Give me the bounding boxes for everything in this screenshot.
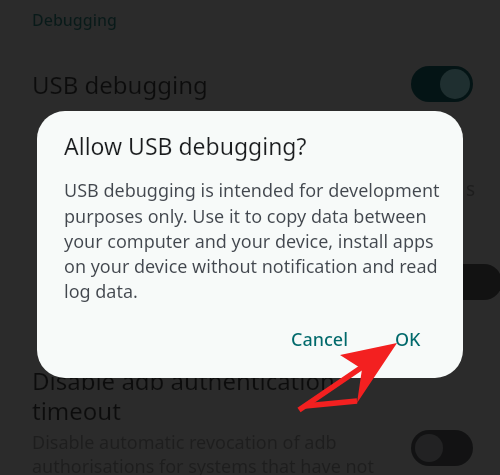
button[interactable]: OK xyxy=(381,319,435,360)
staticText: s xyxy=(466,176,476,202)
staticText: Allow USB debugging? xyxy=(64,130,307,161)
staticText: USB debugging is intended for developmen… xyxy=(64,178,445,303)
staticText: timeout xyxy=(32,394,121,427)
staticText: Debugging xyxy=(32,9,117,31)
staticText: OK xyxy=(395,327,421,352)
staticText: Disable automatic revocation of adb xyxy=(32,430,337,455)
staticText: Disable adb authentication xyxy=(32,364,335,397)
button[interactable]: Cancel xyxy=(277,319,363,360)
staticText: authorisations for systems that have not xyxy=(32,454,374,475)
staticText: USB debugging xyxy=(32,68,208,101)
button[interactable]: Disable adb authentication timeout, off xyxy=(411,430,473,466)
staticText: Cancel xyxy=(291,327,349,352)
button[interactable]: USB debugging, on xyxy=(411,66,473,102)
